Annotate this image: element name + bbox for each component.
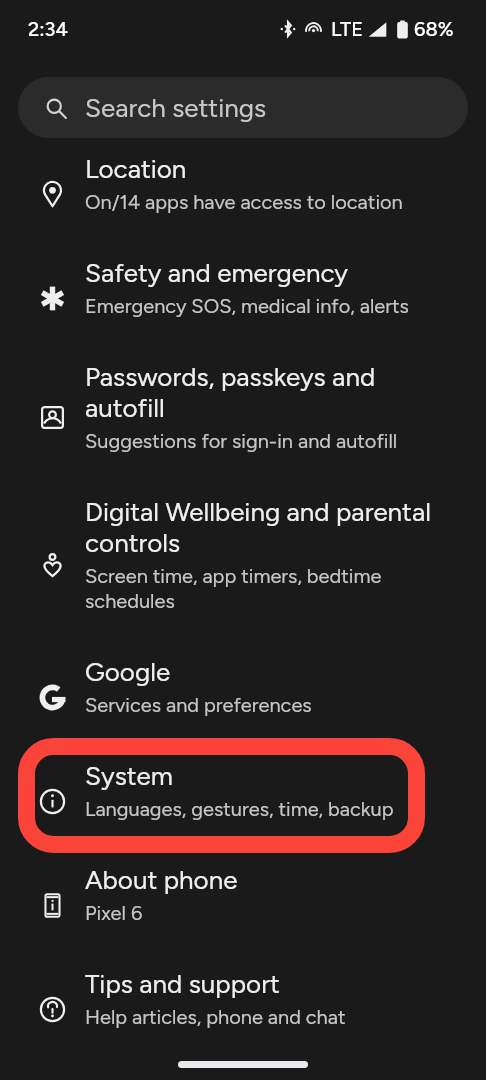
staticText: Tips and support <box>85 968 280 999</box>
staticText: Help articles, phone and chat <box>85 1004 346 1029</box>
button[interactable]: System <box>0 745 486 849</box>
button[interactable]: About phone <box>0 849 486 953</box>
staticText: Safety and emergency <box>85 257 348 288</box>
staticText: Location <box>85 153 187 184</box>
staticText: Languages, gestures, time, backup <box>85 796 394 821</box>
staticText: Suggestions for sign-in and autofill <box>85 428 398 453</box>
staticText: LTE <box>331 17 363 41</box>
button[interactable]: Digital Wellbeing and parental controls <box>0 481 486 641</box>
button[interactable]: Google <box>0 641 486 745</box>
staticText: 68% <box>414 17 454 41</box>
button[interactable]: Tips and support <box>0 953 486 1057</box>
staticText: On/14 apps have access to location <box>85 189 403 214</box>
button[interactable]: Search settings <box>18 77 468 138</box>
staticText: Services and preferences <box>85 692 312 717</box>
staticText: Emergency SOS, medical info, alerts <box>85 293 409 318</box>
button[interactable]: Passwords, passkeys and autofill <box>0 346 486 481</box>
staticText: Digital Wellbeing and parental controls <box>85 496 456 558</box>
staticText: Screen time, app timers, bedtime schedul… <box>85 563 456 613</box>
button[interactable]: Safety and emergency <box>0 242 486 346</box>
staticText: Search settings <box>85 92 267 123</box>
staticText: About phone <box>85 864 238 895</box>
button[interactable]: Location <box>0 138 486 242</box>
staticText: Pixel 6 <box>85 900 143 925</box>
staticText: System <box>85 760 173 791</box>
staticText: Google <box>85 656 171 687</box>
staticText: 2:34 <box>28 17 69 41</box>
staticText: Passwords, passkeys and autofill <box>85 361 456 423</box>
